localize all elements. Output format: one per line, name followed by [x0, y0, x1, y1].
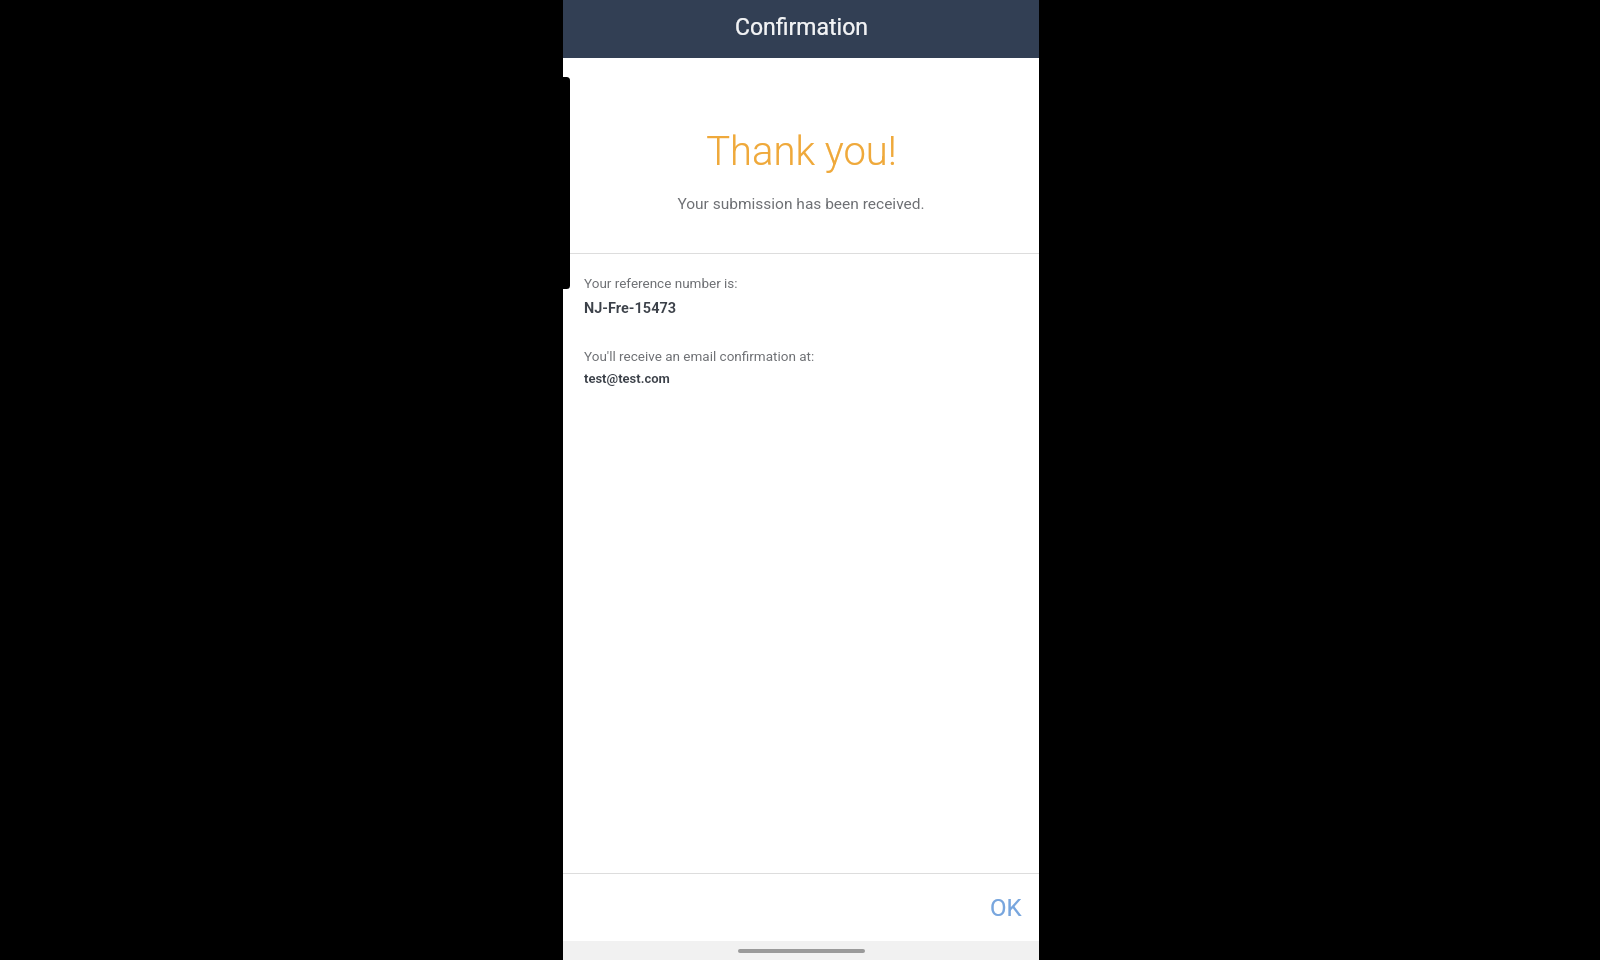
staticText: Your reference number is:	[584, 275, 738, 291]
staticText: test@test.com	[584, 371, 670, 386]
staticText: NJ-Fre-15473	[584, 300, 677, 317]
staticText: Your submission has been received.	[677, 195, 925, 213]
staticText: Confirmation	[735, 14, 868, 41]
button[interactable]: OK	[970, 882, 1036, 934]
staticText: You'll receive an email confirmation at:	[584, 348, 815, 364]
staticText: OK	[990, 894, 1022, 922]
staticText: Thank you!	[706, 128, 897, 175]
